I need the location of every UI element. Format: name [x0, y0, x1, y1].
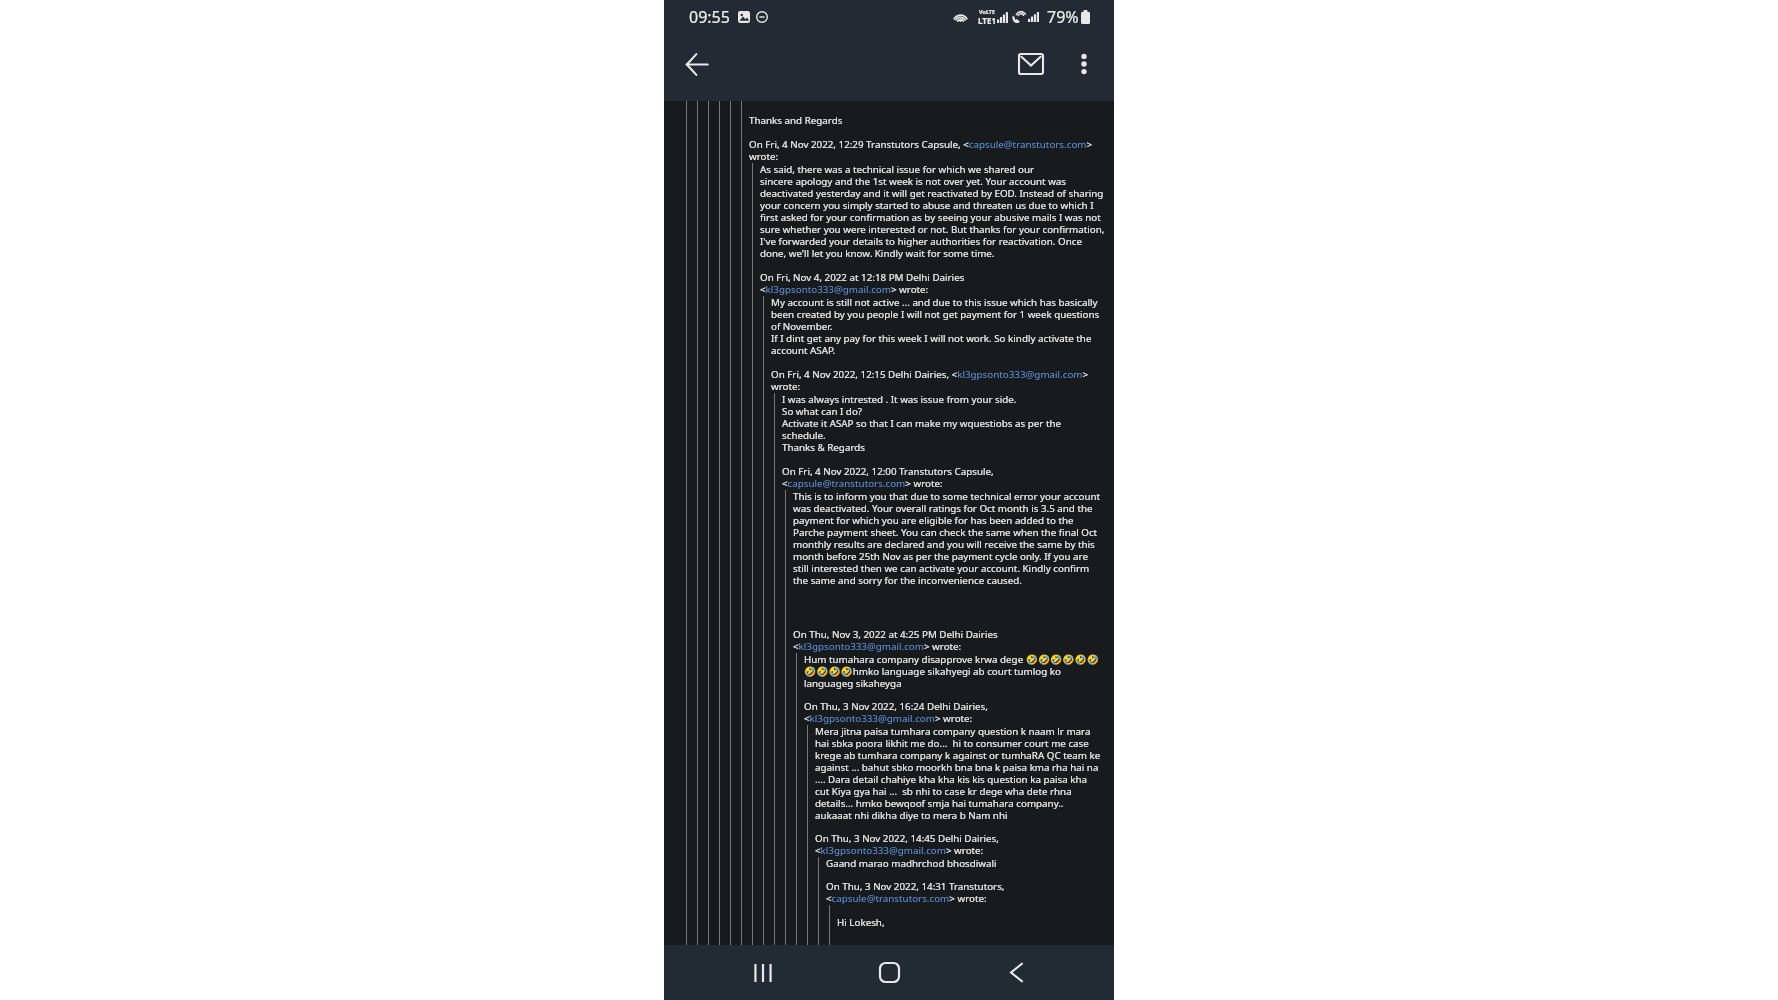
staticText: On Fri, 4 Nov 2022, 12:15 Delhi Dairies,… — [771, 368, 1089, 393]
button[interactable]: Recent apps — [735, 945, 791, 1000]
button[interactable]: Back — [674, 41, 720, 87]
staticText: On Thu, Nov 3, 2022 at 4:25 PM Delhi Dai… — [793, 628, 998, 653]
staticText: On Thu, 3 Nov 2022, 14:31 Transtutors, <… — [826, 880, 1005, 905]
staticText: LTE1 — [978, 15, 996, 26]
button[interactable]: Home — [861, 945, 917, 1000]
staticText: This is to inform you that due to some t… — [793, 490, 1101, 587]
staticText: Mera jitna paisa tumhara company questio… — [815, 725, 1101, 822]
button[interactable]: Back — [988, 945, 1044, 1000]
button[interactable]: Mark as unread — [1008, 41, 1054, 87]
staticText: On Fri, Nov 4, 2022 at 12:18 PM Delhi Da… — [760, 271, 965, 296]
button[interactable]: More options — [1061, 41, 1107, 87]
staticText: Gaand marao madhrchod bhosdiwali — [826, 857, 997, 870]
staticText: 79% — [1047, 6, 1079, 28]
staticText: On Fri, 4 Nov 2022, 12:00 Transtutors Ca… — [782, 465, 994, 490]
staticText: VoLTE — [979, 8, 996, 15]
staticText: On Thu, 3 Nov 2022, 16:24 Delhi Dairies,… — [804, 700, 988, 725]
staticText: I was always intrested . It was issue fr… — [782, 393, 1062, 454]
staticText: 09:55 — [689, 6, 730, 28]
staticText: Thanks and Regards — [749, 114, 843, 127]
staticText: As said, there was a technical issue for… — [760, 163, 1105, 260]
staticText: On Fri, 4 Nov 2022, 12:29 Transtutors Ca… — [749, 138, 1093, 163]
staticText: On Thu, 3 Nov 2022, 14:45 Delhi Dairies,… — [815, 832, 999, 857]
staticText: My account is still not active ... and d… — [771, 296, 1100, 357]
staticText: Hi Lokesh, — [837, 916, 885, 929]
staticText: Hum tumahara company disapprove krwa deg… — [804, 653, 1099, 690]
